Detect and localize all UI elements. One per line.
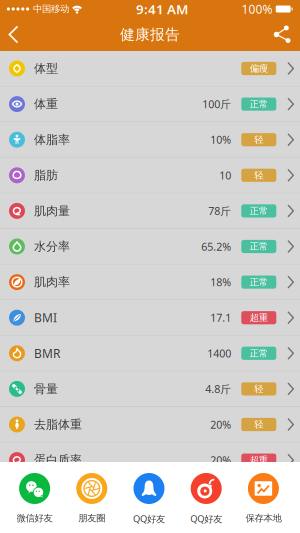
staticText: 体重 — [34, 97, 58, 111]
staticText: 轻 — [254, 383, 263, 395]
staticText: 轻 — [254, 134, 263, 145]
button[interactable]: 保存本地 — [235, 462, 292, 533]
staticText: 10% — [210, 133, 231, 147]
staticText: 健康报告 — [120, 25, 180, 43]
staticText: 9:41 AM — [136, 0, 188, 18]
button[interactable]: 肌肉量 — [0, 193, 300, 229]
button[interactable]: 肌肉率 — [0, 265, 300, 300]
button[interactable]: BMI — [0, 300, 300, 336]
button[interactable]: 返回 — [0, 18, 33, 51]
staticText: 18% — [210, 275, 231, 289]
button[interactable]: 体重 — [0, 87, 300, 122]
button[interactable]: 体脂率 — [0, 122, 300, 158]
button[interactable]: QQ好友 — [120, 462, 178, 533]
staticText: 10 — [219, 168, 231, 182]
button[interactable]: BMR — [0, 336, 300, 371]
staticText: QQ好友 — [133, 512, 165, 525]
staticText: 偏瘦 — [250, 63, 268, 74]
staticText: 保存本地 — [245, 512, 281, 524]
staticText: 100% — [241, 1, 272, 17]
staticText: BMR — [34, 345, 60, 361]
staticText: 4.8斤 — [205, 382, 231, 396]
staticText: 100斤 — [202, 97, 231, 111]
staticText: 正常 — [250, 348, 268, 359]
staticText: 脂肪 — [34, 168, 58, 183]
staticText: 微信好友 — [17, 512, 53, 524]
staticText: BMI — [34, 310, 57, 326]
staticText: 轻 — [254, 419, 263, 430]
button[interactable]: 体型 — [0, 51, 300, 87]
button[interactable]: 微信好友 — [6, 462, 63, 533]
staticText: 正常 — [250, 98, 268, 110]
button[interactable]: 朋友圈 — [63, 462, 120, 533]
staticText: 肌肉量 — [34, 203, 70, 218]
staticText: 去脂体重 — [34, 417, 82, 432]
staticText: 正常 — [250, 241, 268, 252]
staticText: 骨量 — [34, 381, 58, 396]
staticText: 轻 — [254, 170, 263, 181]
button[interactable]: 脂肪 — [0, 158, 300, 193]
staticText: 体脂率 — [34, 132, 70, 147]
button[interactable]: QQ好友 — [178, 462, 235, 533]
staticText: 正常 — [250, 276, 268, 288]
staticText: 肌肉率 — [34, 275, 70, 289]
staticText: 正常 — [250, 205, 268, 217]
button[interactable]: 水分率 — [0, 229, 300, 265]
staticText: 朋友圈 — [78, 512, 105, 524]
button[interactable]: 分享 — [260, 18, 300, 51]
staticText: 20% — [210, 453, 231, 467]
button[interactable]: 蛋白质率 — [0, 443, 300, 478]
button[interactable]: 去脂体重 — [0, 407, 300, 443]
staticText: 超重 — [250, 454, 268, 466]
staticText: 1400 — [207, 346, 231, 360]
staticText: 17.1 — [210, 311, 231, 325]
staticText: 蛋白质率 — [34, 453, 82, 467]
button[interactable]: 骨量 — [0, 371, 300, 407]
staticText: 20% — [210, 417, 231, 432]
staticText: 65.2% — [201, 239, 231, 254]
staticText: 中国移动 — [33, 3, 69, 15]
staticText: QQ好友 — [190, 512, 222, 525]
staticText: 水分率 — [34, 239, 70, 254]
staticText: 超重 — [250, 312, 268, 323]
staticText: 体型 — [34, 61, 58, 76]
staticText: 78斤 — [208, 204, 231, 218]
